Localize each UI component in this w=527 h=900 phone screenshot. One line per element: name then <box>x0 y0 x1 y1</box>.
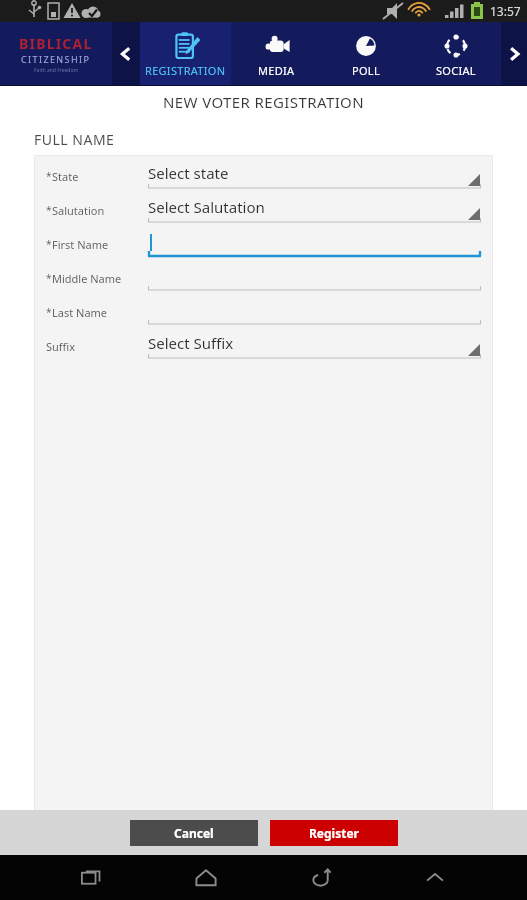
staticText: NEW VOTER REGISTRATION <box>0 92 527 112</box>
staticText: Register <box>309 825 359 841</box>
staticText: * <box>46 271 52 285</box>
staticText: * <box>46 305 52 319</box>
staticText: First Name <box>52 237 109 252</box>
staticText: * <box>46 169 52 183</box>
staticText: FULL NAME <box>34 130 115 149</box>
staticText: Select Suffix <box>148 333 234 353</box>
button[interactable]: Back <box>298 855 344 900</box>
button[interactable]: * <box>34 193 493 227</box>
staticText: Faith and Freedom <box>34 67 79 74</box>
button[interactable]: REGISTRATION <box>140 22 231 86</box>
button[interactable]: Cancel <box>130 820 258 846</box>
staticText: Suffix <box>46 339 76 354</box>
staticText: * <box>46 237 52 251</box>
button[interactable]: MEDIA <box>231 22 321 86</box>
staticText: Middle Name <box>52 271 122 286</box>
staticText: * <box>46 203 52 217</box>
staticText: Select Salutation <box>148 197 265 217</box>
button[interactable]: Previous tabs <box>112 22 140 86</box>
button[interactable]: Next tabs <box>501 22 527 86</box>
staticText: Select state <box>148 163 229 183</box>
button[interactable]: Recents <box>69 855 115 900</box>
button[interactable]: BIBLICAL <box>0 22 112 86</box>
button[interactable]: SOCIAL <box>411 22 501 86</box>
button[interactable]: * <box>34 261 493 295</box>
staticText: REGISTRATION <box>145 63 226 78</box>
button[interactable]: Home <box>183 855 229 900</box>
button[interactable]: Register <box>270 820 398 846</box>
button[interactable]: * <box>34 159 493 193</box>
button[interactable]: POLL <box>321 22 411 86</box>
button[interactable]: * <box>34 295 493 329</box>
staticText: Last Name <box>52 305 108 320</box>
staticText: MEDIA <box>258 63 295 78</box>
button[interactable]: * <box>34 227 493 261</box>
staticText: State <box>52 169 79 184</box>
staticText: 13:57 <box>490 3 521 19</box>
staticText: BIBLICAL <box>19 34 93 53</box>
staticText: POLL <box>352 63 380 78</box>
staticText: Salutation <box>52 203 105 218</box>
button[interactable]: Suffix <box>34 329 493 363</box>
staticText: SOCIAL <box>436 63 476 78</box>
staticText: CITIZENSHIP <box>21 53 91 65</box>
staticText: Cancel <box>174 825 214 841</box>
button[interactable]: Show menu <box>412 855 458 900</box>
